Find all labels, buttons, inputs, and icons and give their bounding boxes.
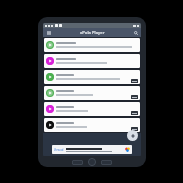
button[interactable]: Duration (131, 111, 138, 115)
button[interactable]: Home (88, 158, 96, 166)
staticText: View ad (54, 148, 64, 152)
button[interactable]: Add (127, 130, 138, 141)
button[interactable]: Duration (131, 79, 138, 83)
button[interactable]: Duration (44, 102, 140, 116)
button[interactable]: View ad (52, 145, 132, 154)
staticText: xPola Player (80, 30, 105, 36)
button[interactable]: Duration (44, 86, 140, 100)
button[interactable] (44, 54, 140, 68)
button[interactable]: Duration (131, 127, 138, 131)
button[interactable] (101, 160, 112, 165)
button[interactable]: Duration (44, 118, 140, 132)
button[interactable]: Menu (45, 29, 52, 36)
button[interactable]: Search (132, 29, 139, 36)
button[interactable] (72, 160, 83, 165)
button[interactable]: Duration (131, 95, 138, 99)
button[interactable]: Duration (44, 70, 140, 84)
button[interactable] (44, 38, 140, 52)
